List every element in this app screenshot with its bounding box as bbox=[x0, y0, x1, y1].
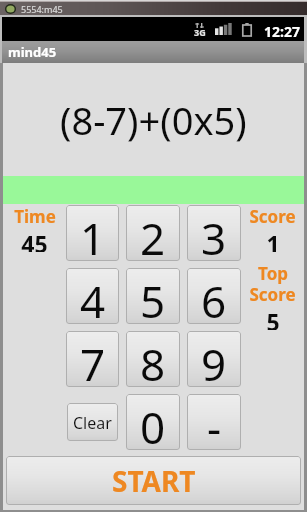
staticText: 5 bbox=[140, 271, 166, 324]
staticText: 4 bbox=[80, 271, 106, 324]
staticText: 7 bbox=[80, 334, 106, 387]
staticText: 8 bbox=[140, 334, 166, 387]
staticText: 5554:m45 bbox=[21, 3, 63, 15]
staticText: Score bbox=[249, 283, 296, 306]
staticText: 1 bbox=[266, 228, 280, 252]
staticText: 3G bbox=[194, 26, 206, 38]
staticText: START bbox=[112, 462, 196, 500]
button[interactable]: 2 bbox=[126, 205, 180, 261]
staticText: 0 bbox=[140, 397, 166, 450]
staticText: mind45 bbox=[8, 43, 57, 61]
button[interactable]: 3 bbox=[187, 205, 241, 261]
button[interactable]: 9 bbox=[187, 331, 241, 387]
button[interactable]: START bbox=[6, 456, 301, 505]
staticText: - bbox=[207, 397, 222, 450]
staticText: 2 bbox=[140, 208, 166, 261]
button[interactable]: 6 bbox=[187, 268, 241, 324]
staticText: Score bbox=[249, 205, 296, 228]
button[interactable]: 4 bbox=[66, 268, 119, 324]
button[interactable]: 8 bbox=[126, 331, 180, 387]
staticText: 45 bbox=[21, 228, 48, 252]
staticText: 5 bbox=[266, 306, 280, 330]
staticText: 1 bbox=[80, 208, 106, 261]
staticText: 6 bbox=[201, 271, 227, 324]
button[interactable]: Clear bbox=[67, 403, 118, 441]
button[interactable]: 1 bbox=[66, 205, 119, 261]
button[interactable]: 5 bbox=[126, 268, 180, 324]
staticText: (8-7)+(0x5) bbox=[60, 94, 247, 146]
staticText: 3 bbox=[201, 208, 227, 261]
staticText: 9 bbox=[201, 334, 227, 387]
button[interactable]: 0 bbox=[126, 394, 180, 450]
staticText: Time bbox=[14, 205, 56, 228]
staticText: 12:27 bbox=[264, 22, 300, 41]
staticText: Clear bbox=[73, 412, 112, 434]
staticText: Top bbox=[258, 262, 288, 285]
button[interactable]: 7 bbox=[66, 331, 119, 387]
button[interactable]: - bbox=[187, 394, 241, 450]
